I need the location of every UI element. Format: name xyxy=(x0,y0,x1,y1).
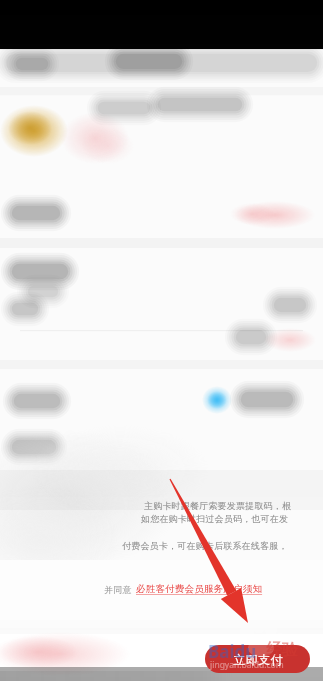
staticText: 必胜客付费会员服务用户须知 xyxy=(136,583,263,595)
staticText: 立即支付 xyxy=(233,652,283,667)
staticText: 付费会员卡，可在购卡后联系在线客服， xyxy=(122,540,288,551)
staticText: Baidu xyxy=(208,640,257,663)
staticText: 经验 xyxy=(266,640,298,660)
staticText: jingyan.baidu.com xyxy=(210,659,284,671)
button[interactable]: 必胜客付费会员服务用户须知 xyxy=(136,583,263,595)
button[interactable]: 立即支付 xyxy=(205,645,310,673)
staticText: 主购卡时跟餐厅索要发票提取码，根 xyxy=(144,500,292,511)
staticText: 并同意 xyxy=(104,584,132,595)
staticText: 如您在购卡时扫过会员码，也可在发 xyxy=(141,513,289,524)
